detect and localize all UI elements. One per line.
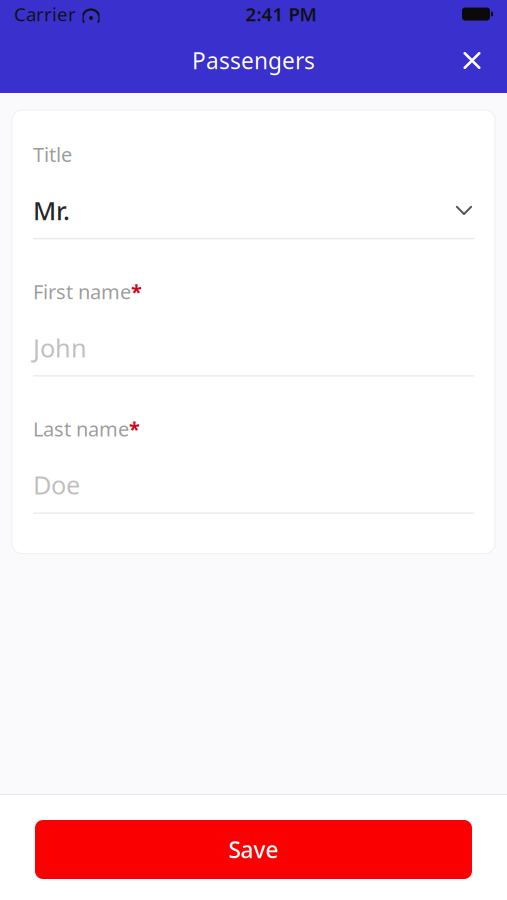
staticText: John (33, 331, 87, 364)
staticText: Last name (33, 415, 129, 442)
staticText: First name (33, 278, 131, 305)
staticText: Title (33, 141, 72, 168)
button[interactable]: First name (33, 278, 474, 376)
staticText: Passengers (192, 45, 315, 75)
button[interactable]: Title (33, 141, 474, 239)
staticText: * (131, 278, 142, 305)
staticText: Carrier (14, 2, 76, 26)
button[interactable]: Save (35, 820, 472, 879)
staticText: 2:41 PM (245, 2, 316, 26)
button[interactable]: Close (449, 37, 495, 83)
staticText: Mr. (33, 194, 70, 227)
staticText: Doe (33, 468, 80, 502)
staticText: Save (228, 834, 278, 864)
button[interactable]: Last name (33, 415, 474, 514)
staticText: * (129, 415, 140, 442)
